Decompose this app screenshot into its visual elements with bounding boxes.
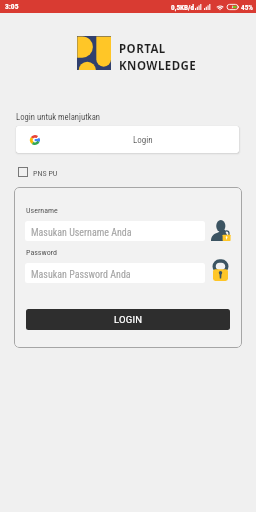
staticText: Login untuk melanjutkan [16, 112, 101, 122]
staticText: Masukan Password Anda [31, 269, 131, 281]
button[interactable]: Login [16, 126, 239, 153]
staticText: Masukan Username Anda [31, 227, 132, 239]
staticText: PORTAL [119, 41, 166, 57]
other: Password [213, 261, 228, 281]
button[interactable]: Masukan Username Anda [25, 221, 205, 241]
staticText: 45% [241, 3, 253, 11]
staticText: PNS PU [33, 169, 58, 178]
staticText: Login [133, 135, 153, 146]
button[interactable]: LOGIN [26, 309, 230, 330]
staticText: KNOWLEDGE [119, 58, 197, 74]
button[interactable]: Masukan Password Anda [25, 263, 205, 283]
button[interactable]: PNS PU [18, 167, 58, 177]
staticText: Password [26, 248, 58, 257]
staticText: Username [26, 206, 58, 215]
other: Username [211, 220, 231, 241]
staticText: 3:05 [5, 2, 19, 11]
staticText: 0,5KB/d [171, 3, 194, 11]
staticText: LOGIN [114, 314, 143, 325]
